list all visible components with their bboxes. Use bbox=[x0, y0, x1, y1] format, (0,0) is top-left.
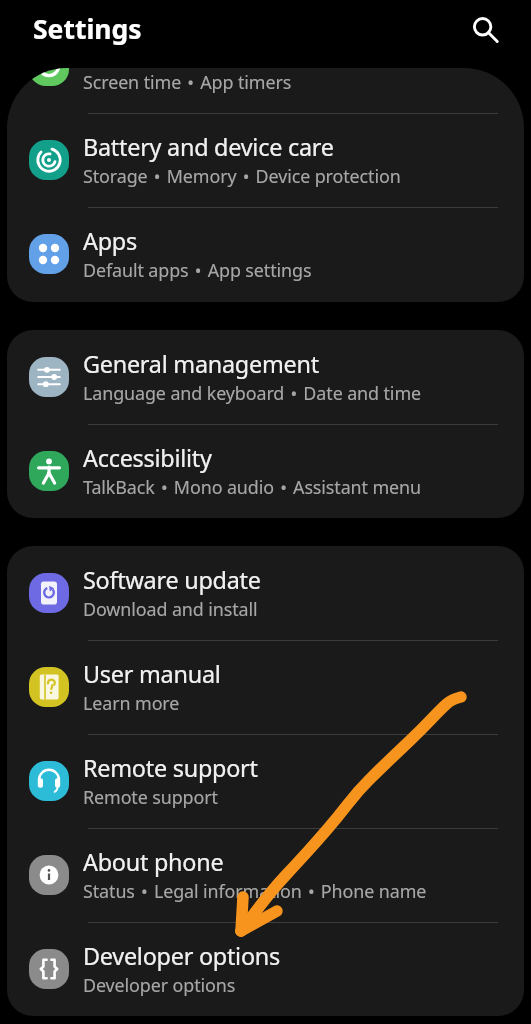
staticText: User manual bbox=[83, 658, 221, 690]
button[interactable]: Search bbox=[464, 9, 504, 49]
button[interactable]: Digital Wellbeing and parental controls bbox=[7, 68, 524, 113]
staticText: About phone bbox=[83, 846, 224, 878]
staticText: Storage • Memory • Device protection bbox=[83, 164, 401, 188]
button[interactable]: General management bbox=[7, 330, 524, 424]
button[interactable]: Remote support bbox=[7, 734, 524, 828]
staticText: Digital Wellbeing and parental controls bbox=[83, 68, 501, 69]
staticText: Battery and device care bbox=[83, 131, 334, 163]
staticText: Remote support bbox=[83, 752, 258, 784]
staticText: Language and keyboard • Date and time bbox=[83, 381, 422, 405]
staticText: Default apps • App settings bbox=[83, 258, 312, 282]
staticText: Remote support bbox=[83, 785, 218, 809]
staticText: Accessibility bbox=[83, 442, 212, 474]
button[interactable]: Software update bbox=[7, 546, 524, 640]
button[interactable]: Battery and device care bbox=[7, 113, 524, 207]
staticText: Developer options bbox=[83, 973, 236, 997]
staticText: Download and install bbox=[83, 597, 258, 621]
staticText: Screen time • App timers bbox=[83, 70, 292, 94]
button[interactable]: About phone bbox=[7, 828, 524, 922]
button[interactable]: User manual bbox=[7, 640, 524, 734]
button[interactable]: Apps bbox=[7, 207, 524, 301]
staticText: Software update bbox=[83, 564, 261, 596]
button[interactable]: Developer options bbox=[7, 922, 524, 1016]
staticText: Settings bbox=[33, 11, 142, 47]
staticText: Developer options bbox=[83, 940, 280, 972]
button[interactable]: Accessibility bbox=[7, 424, 524, 518]
staticText: Status • Legal information • Phone name bbox=[83, 879, 427, 903]
staticText: Apps bbox=[83, 225, 137, 257]
staticText: General management bbox=[83, 348, 319, 380]
staticText: TalkBack • Mono audio • Assistant menu bbox=[83, 475, 422, 499]
staticText: Learn more bbox=[83, 691, 180, 715]
